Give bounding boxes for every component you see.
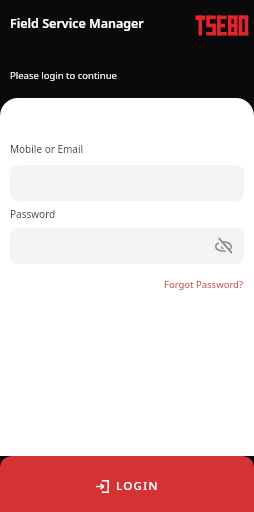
button[interactable] bbox=[10, 228, 244, 264]
staticText: Password bbox=[10, 207, 56, 221]
staticText: Please login to continue bbox=[10, 69, 117, 82]
button[interactable]: LOGIN bbox=[0, 456, 254, 512]
staticText: Mobile or Email bbox=[10, 142, 84, 156]
button[interactable]: Forgot Password? bbox=[164, 278, 244, 291]
staticText: Field Service Manager bbox=[10, 15, 144, 32]
staticText: LOGIN bbox=[116, 478, 159, 494]
